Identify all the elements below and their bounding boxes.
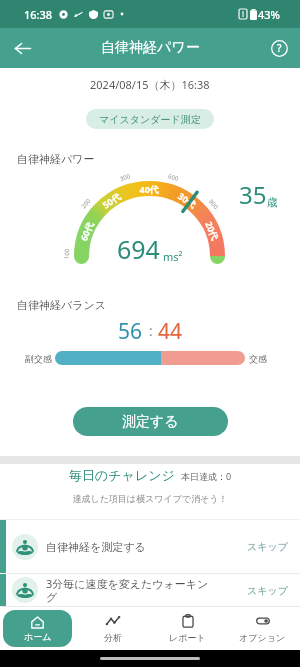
staticText: レポート [169, 632, 206, 643]
staticText: ms² [163, 249, 183, 264]
staticText: 分析 [104, 632, 122, 643]
button[interactable]: マイスタンダード測定 [86, 109, 214, 129]
staticText: ： [143, 322, 158, 341]
staticText: 達成した項目は横スワイプで消そう！ [0, 493, 300, 504]
staticText: 歳 [267, 195, 278, 209]
button[interactable]: ホーム [3, 610, 72, 647]
staticText: スキップ [247, 584, 288, 597]
staticText: 本日達成：0 [181, 470, 232, 482]
button[interactable]: レポート [150, 607, 225, 650]
staticText: 自律神経パワー [17, 152, 95, 166]
staticText: 自律神経パワー [101, 39, 200, 57]
staticText: オプション [239, 632, 286, 643]
staticText: 35 [239, 178, 267, 211]
staticText: 56 [118, 317, 143, 346]
staticText: スキップ [247, 540, 288, 553]
button[interactable]: 3分毎に速度を変えたウォーキン グ [0, 574, 300, 606]
staticText: 自律神経バランス [17, 298, 107, 312]
staticText: 自律神経を測定する [46, 540, 247, 554]
button[interactable]: オプション [225, 607, 300, 650]
staticText: 測定する [122, 413, 179, 431]
button[interactable]: 測定する [73, 407, 228, 436]
staticText: 2024/08/15（木）16:38 [90, 77, 210, 92]
staticText: 3分毎に速度を変えたウォーキン グ [46, 576, 247, 605]
staticText: 16:38 [24, 7, 53, 22]
button[interactable]: Help [263, 32, 295, 64]
staticText: ホーム [24, 631, 52, 642]
staticText: 副交感 [25, 353, 52, 364]
button[interactable]: Back [4, 30, 40, 66]
staticText: ? [277, 41, 282, 55]
staticText: 694 [117, 232, 160, 266]
staticText: 43% [258, 7, 280, 22]
button[interactable]: 自律神経を測定する [0, 520, 300, 573]
staticText: 毎日のチャレンジ [69, 467, 175, 483]
button[interactable]: 分析 [75, 607, 150, 650]
staticText: マイスタンダード測定 [99, 113, 201, 126]
staticText: 交感 [249, 353, 267, 364]
staticText: 44 [158, 317, 183, 346]
